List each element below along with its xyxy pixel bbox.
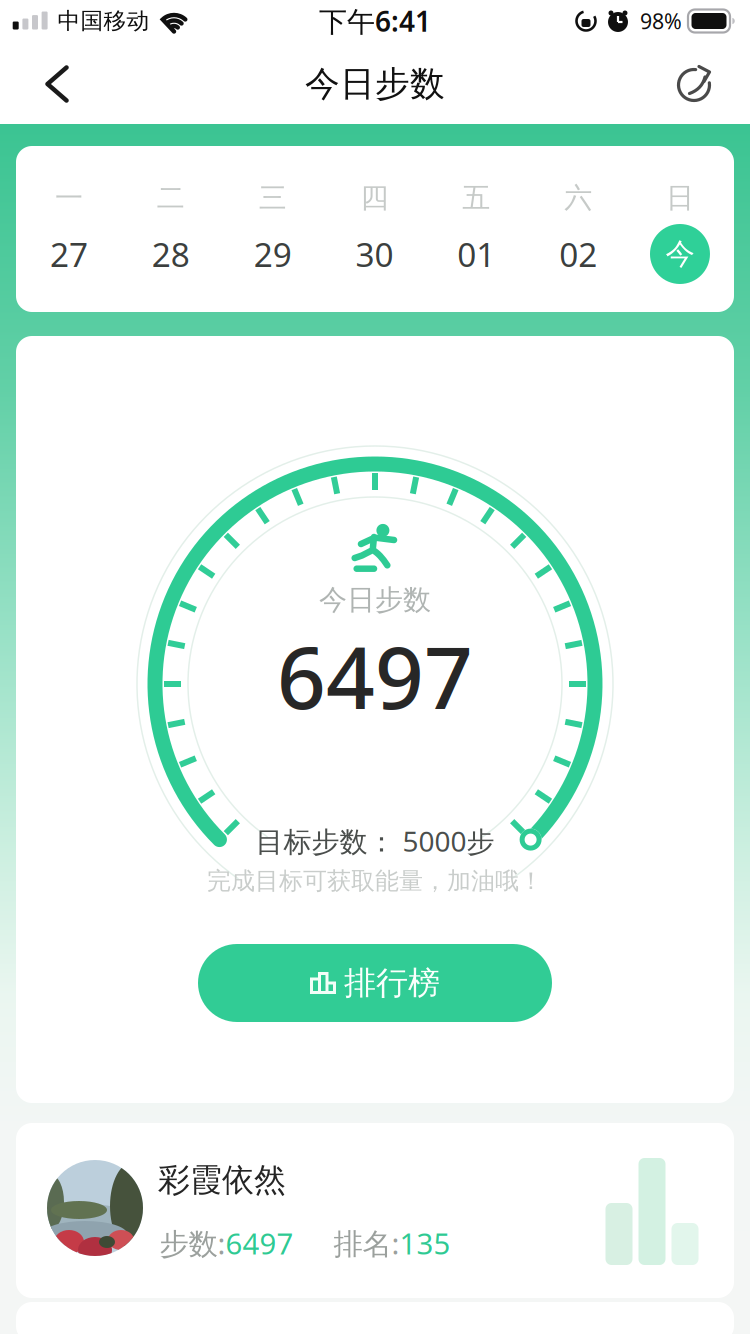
staticText: 目标步数： 5000步	[255, 822, 494, 860]
staticText: 02	[559, 232, 597, 276]
staticText: 三	[259, 181, 287, 215]
button[interactable]: 排行榜	[198, 944, 552, 1022]
staticText: 中国移动	[57, 7, 149, 35]
button[interactable]: 今	[650, 224, 710, 284]
staticText: 今日步数	[319, 583, 431, 617]
staticText: 日	[666, 181, 694, 215]
staticText: 6497	[225, 1223, 293, 1262]
staticText: 下午6:41	[319, 2, 431, 40]
staticText: 五	[462, 181, 490, 215]
staticText: 四	[360, 181, 388, 215]
button[interactable]: 刷新	[664, 54, 724, 114]
staticText: 一	[55, 181, 83, 215]
staticText: 步数:	[159, 1223, 225, 1262]
button[interactable]: 返回	[33, 53, 80, 114]
staticText: 今	[665, 236, 694, 272]
staticText: 6497	[277, 619, 473, 733]
staticText: 今日步数	[305, 63, 445, 105]
staticText: 29	[254, 232, 292, 276]
button[interactable]: 彩霞依然	[16, 1123, 734, 1298]
staticText: 01	[457, 232, 495, 276]
staticText: 彩霞依然	[158, 1160, 286, 1200]
staticText: 二	[157, 181, 185, 215]
staticText: 六	[564, 181, 592, 215]
staticText: 27	[50, 232, 88, 276]
staticText: 135	[399, 1223, 450, 1262]
staticText: 完成目标可获取能量，加油哦！	[207, 866, 543, 896]
staticText: 28	[152, 232, 190, 276]
staticText: 排行榜	[344, 963, 440, 1003]
staticText: 排名:	[333, 1223, 399, 1262]
staticText: 98%	[640, 7, 682, 35]
staticText: 30	[355, 232, 393, 276]
